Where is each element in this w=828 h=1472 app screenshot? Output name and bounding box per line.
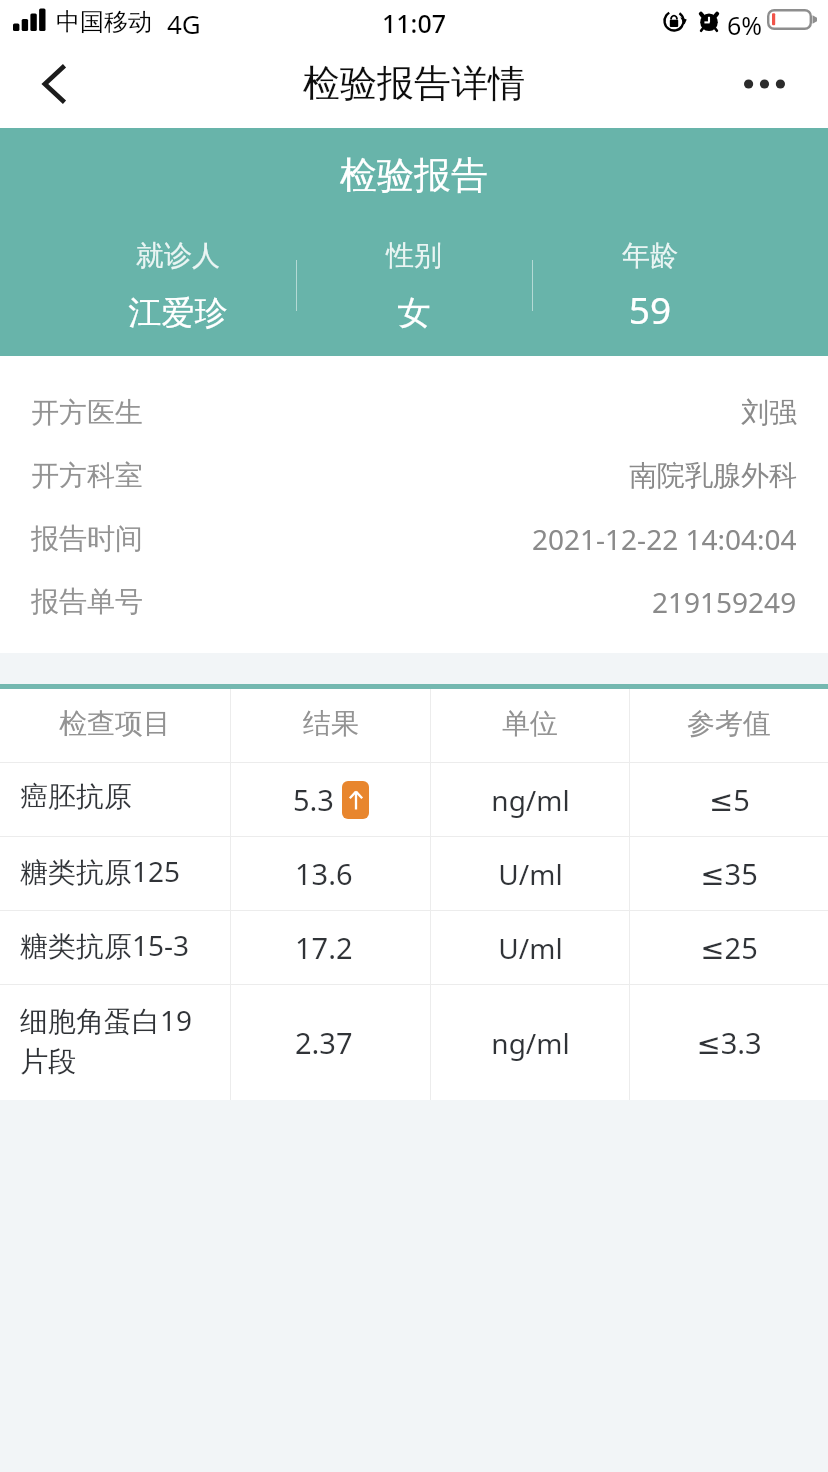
staticText: 5.3 bbox=[293, 780, 334, 819]
staticText: ng/ml bbox=[491, 781, 570, 819]
staticText: 6% bbox=[727, 8, 763, 42]
button[interactable]: 糖类抗原125 bbox=[0, 837, 828, 910]
staticText: ≤3.3 bbox=[696, 1023, 762, 1062]
staticText: 11:07 bbox=[382, 6, 447, 40]
staticText: 中国移动 bbox=[56, 7, 152, 37]
button[interactable]: 细胞角蛋白19片段 bbox=[0, 985, 828, 1100]
staticText: 结果 bbox=[303, 706, 359, 741]
staticText: 报告时间 bbox=[31, 521, 143, 556]
staticText: ≤25 bbox=[700, 928, 758, 967]
staticText: 细胞角蛋白19片段 bbox=[20, 1001, 217, 1079]
staticText: 2021-12-22 14:04:04 bbox=[532, 520, 797, 558]
staticText: 13.6 bbox=[295, 854, 353, 893]
staticText: 检查项目 bbox=[59, 706, 171, 741]
other: Alarm bbox=[697, 9, 721, 33]
staticText: 女 bbox=[296, 292, 532, 334]
staticText: 参考值 bbox=[687, 706, 771, 741]
staticText: 检验报告详情 bbox=[303, 60, 525, 107]
staticText: 17.2 bbox=[295, 928, 353, 967]
staticText: ng/ml bbox=[491, 1024, 570, 1062]
button[interactable]: Back bbox=[6, 56, 102, 112]
staticText: 4G bbox=[167, 6, 201, 41]
staticText: 南院乳腺外科 bbox=[629, 458, 797, 493]
staticText: 59 bbox=[532, 284, 768, 334]
staticText: ≤5 bbox=[709, 780, 750, 819]
staticText: 江爱珍 bbox=[60, 292, 296, 334]
staticText: 检验报告 bbox=[0, 152, 828, 199]
staticText: 开方医生 bbox=[31, 395, 143, 430]
staticText: 糖类抗原15-3 bbox=[20, 926, 190, 964]
staticText: 219159249 bbox=[652, 583, 797, 621]
staticText: U/ml bbox=[498, 855, 563, 893]
staticText: 单位 bbox=[502, 706, 558, 741]
staticText: 性别 bbox=[296, 238, 532, 273]
staticText: U/ml bbox=[498, 929, 563, 967]
other: Rotation lock bbox=[663, 10, 685, 32]
staticText: 2.37 bbox=[295, 1023, 353, 1062]
staticText: 刘强 bbox=[741, 395, 797, 430]
staticText: 报告单号 bbox=[31, 584, 143, 619]
staticText: 开方科室 bbox=[31, 458, 143, 493]
button[interactable]: More options bbox=[708, 56, 820, 112]
staticText: ≤35 bbox=[700, 854, 758, 893]
button[interactable]: 癌胚抗原 bbox=[0, 763, 828, 836]
staticText: 糖类抗原125 bbox=[20, 852, 181, 890]
button[interactable]: 糖类抗原15-3 bbox=[0, 911, 828, 984]
staticText: 就诊人 bbox=[60, 238, 296, 273]
other: Battery 6 percent bbox=[767, 9, 818, 30]
staticText: 年龄 bbox=[532, 238, 768, 273]
staticText: 癌胚抗原 bbox=[20, 779, 132, 814]
